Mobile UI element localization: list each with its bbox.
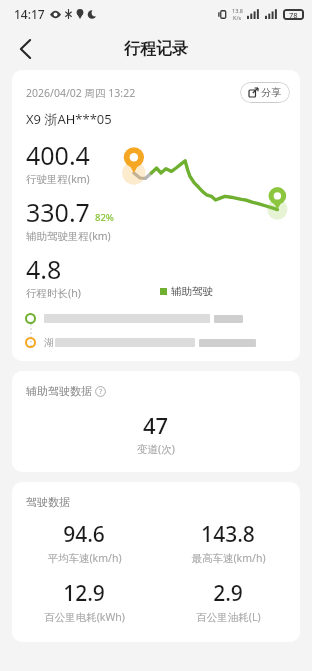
staticText: 330.7	[26, 195, 90, 229]
staticText: K/s	[233, 14, 242, 21]
staticText: 行程记录	[124, 39, 188, 59]
staticText: 平均车速(km/h)	[47, 551, 122, 565]
staticText: 最高车速(km/h)	[191, 551, 266, 565]
staticText: 4.8	[26, 252, 62, 286]
staticText: 辅助驾驶数据	[26, 384, 92, 398]
button[interactable]: 分享	[240, 82, 290, 103]
staticText: 行程时长(h)	[26, 286, 81, 300]
staticText: 94.6	[63, 520, 105, 549]
staticText: 辅助驾驶	[171, 285, 213, 298]
staticText: 分享	[261, 86, 281, 99]
button[interactable]: Info	[95, 386, 106, 397]
staticText: X9 浙AH***05	[26, 110, 112, 128]
staticText: 辅助驾驶里程(km)	[26, 229, 111, 243]
staticText: 47	[143, 410, 169, 440]
staticText: 2026/04/02 周四 13:22	[26, 86, 136, 100]
staticText: 百公里电耗(kWh)	[44, 610, 125, 624]
staticText: ?	[99, 387, 103, 397]
staticText: 14:17	[14, 6, 45, 22]
staticText: 百公里油耗(L)	[196, 610, 261, 624]
staticText: 行驶里程(km)	[26, 172, 90, 186]
staticText: 13.8	[232, 7, 243, 14]
staticText: 143.8	[201, 520, 255, 549]
staticText: 78	[289, 10, 298, 20]
button[interactable]: Back	[6, 30, 44, 68]
staticText: 400.4	[26, 138, 90, 172]
staticText: 变道(次)	[137, 442, 175, 456]
staticText: 驾驶数据	[26, 495, 70, 509]
staticText: 82%	[95, 211, 114, 224]
staticText: 12.9	[63, 579, 105, 608]
staticText: 湖	[44, 336, 54, 349]
staticText: 2.9	[213, 579, 243, 608]
